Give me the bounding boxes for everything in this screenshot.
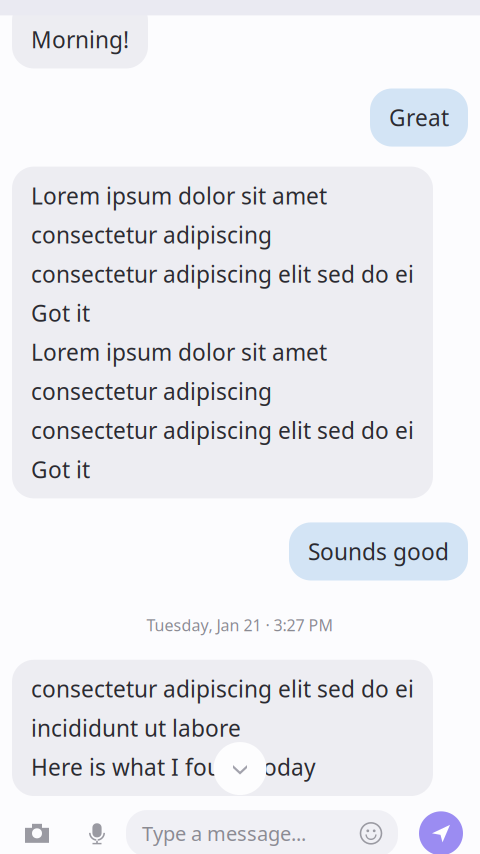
staticText: Morning!: [31, 24, 129, 54]
staticText: Great: [389, 102, 449, 133]
button[interactable]: Scroll to latest message: [213, 742, 266, 795]
button[interactable]: Emoji: [360, 822, 382, 844]
button[interactable]: Sounds good: [12, 522, 468, 580]
staticText: Tuesday, Jan 21 · 3:27 PM: [146, 614, 333, 636]
staticText: Type a message...: [142, 820, 306, 847]
button[interactable]: Great: [12, 88, 468, 147]
staticText: consectetur adipiscing elit sed do ei in…: [31, 674, 414, 782]
button[interactable]: Record voice message: [68, 810, 126, 854]
button[interactable]: Send: [419, 811, 463, 854]
button[interactable]: consectetur adipiscing elit sed do ei in…: [12, 660, 468, 796]
staticText: Sounds good: [308, 536, 449, 566]
button[interactable]: Camera: [6, 810, 68, 854]
staticText: Lorem ipsum dolor sit amet consectetur a…: [31, 181, 414, 484]
button[interactable]: Lorem ipsum dolor sit amet consectetur a…: [12, 167, 468, 498]
button[interactable]: Morning!: [12, 0, 468, 68]
